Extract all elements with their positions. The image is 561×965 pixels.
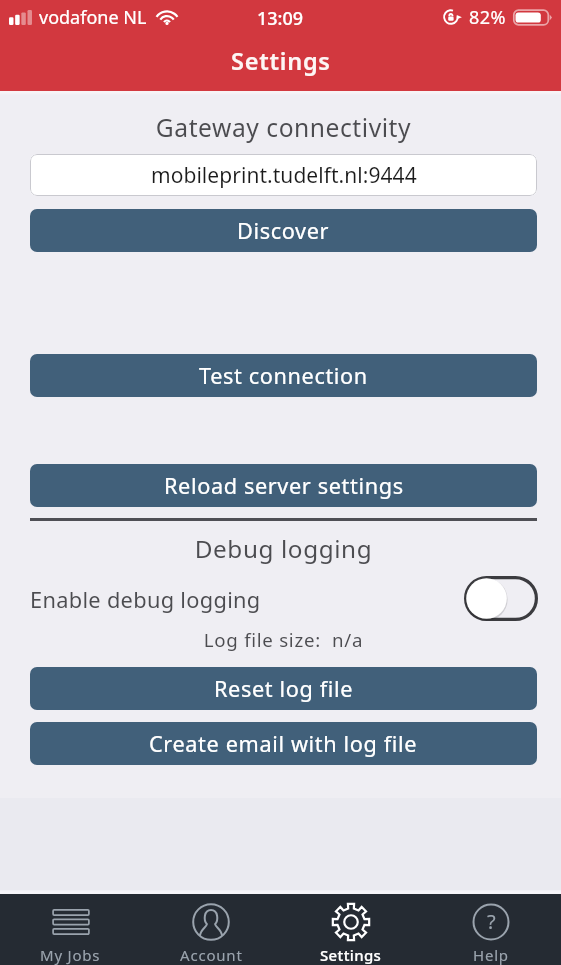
staticText: Log file size: n/a bbox=[30, 627, 537, 652]
staticText: My Jobs bbox=[40, 945, 101, 965]
staticText: Enable debug logging bbox=[30, 585, 261, 615]
staticText: Test connection bbox=[199, 361, 368, 391]
staticText: Settings bbox=[320, 945, 382, 965]
button[interactable]: Create email with log file bbox=[30, 722, 537, 765]
button[interactable]: Account bbox=[141, 894, 281, 965]
staticText: mobileprint.tudelft.nl:9444 bbox=[151, 161, 417, 190]
button[interactable]: Discover bbox=[30, 209, 537, 252]
staticText: Gateway connectivity bbox=[30, 111, 537, 145]
button[interactable]: mobileprint.tudelft.nl:9444 bbox=[30, 154, 537, 196]
staticText: 82% bbox=[469, 5, 506, 30]
staticText: ? bbox=[487, 908, 496, 935]
button[interactable]: ? bbox=[421, 894, 561, 965]
staticText: Discover bbox=[237, 216, 330, 246]
staticText: Reload server settings bbox=[164, 471, 404, 501]
button[interactable]: My Jobs bbox=[0, 894, 141, 965]
staticText: Reset log file bbox=[214, 674, 354, 704]
staticText: Debug logging bbox=[30, 532, 537, 565]
button[interactable]: Test connection bbox=[30, 354, 537, 397]
staticText: vodafone NL bbox=[39, 5, 147, 30]
staticText: Help bbox=[473, 945, 509, 965]
button[interactable]: Reset log file bbox=[30, 667, 537, 710]
staticText: 13:09 bbox=[257, 6, 304, 31]
staticText: Create email with log file bbox=[149, 729, 418, 759]
staticText: Settings bbox=[231, 45, 331, 77]
button[interactable]: Enable debug logging toggle bbox=[464, 576, 538, 621]
button[interactable]: Settings bbox=[281, 894, 421, 965]
button[interactable]: Reload server settings bbox=[30, 464, 537, 507]
staticText: Account bbox=[180, 945, 243, 965]
